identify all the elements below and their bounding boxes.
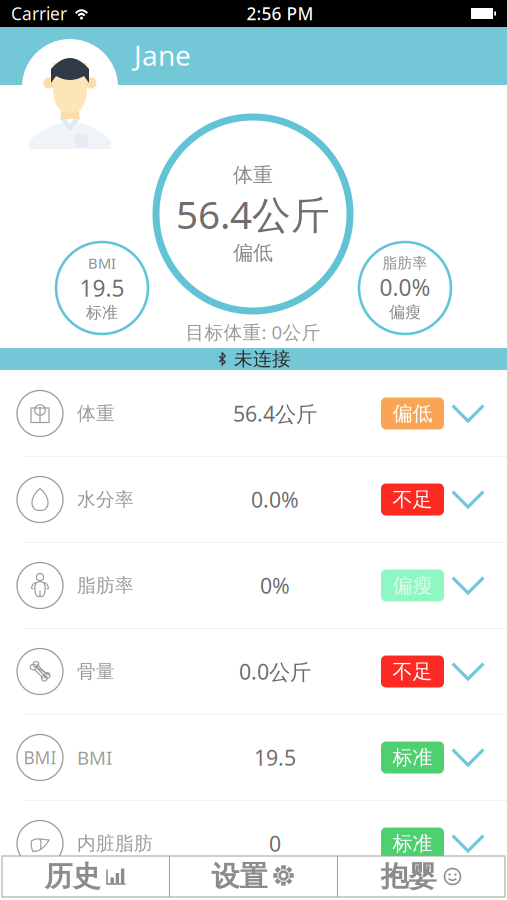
- staticText: 标准: [392, 831, 432, 856]
- staticText: 偏瘦: [392, 573, 432, 598]
- staticText: 标准: [392, 745, 432, 770]
- button[interactable]: 设置: [170, 856, 337, 897]
- staticText: Carrier: [11, 2, 67, 25]
- staticText: 偏低: [392, 401, 432, 426]
- button[interactable]: 历史: [2, 856, 169, 897]
- staticText: 内脏脂肪: [77, 832, 153, 855]
- button[interactable]: 体重: [0, 371, 507, 456]
- staticText: 体重: [77, 402, 115, 425]
- button[interactable]: BMI: [0, 715, 507, 800]
- staticText: 偏瘦: [389, 302, 421, 322]
- staticText: 体重: [233, 163, 273, 187]
- staticText: BMI: [23, 746, 56, 769]
- staticText: 骨量: [77, 660, 115, 683]
- staticText: 水分率: [77, 488, 134, 511]
- staticText: 不足: [392, 487, 432, 512]
- staticText: 19.5: [254, 743, 296, 772]
- button[interactable]: 脂肪率: [0, 543, 507, 628]
- staticText: BMI: [88, 253, 116, 273]
- button[interactable]: 骨量: [0, 629, 507, 714]
- button[interactable]: 内脏脂肪: [0, 801, 507, 886]
- staticText: Jane: [134, 36, 191, 74]
- staticText: 2:56 PM: [246, 2, 313, 25]
- staticText: BMI: [77, 745, 112, 770]
- button[interactable]: 抱婴: [338, 856, 505, 897]
- staticText: 0.0公斤: [239, 657, 311, 686]
- staticText: 0.0%: [379, 272, 430, 302]
- staticText: 56.4公斤: [233, 399, 317, 428]
- staticText: 不足: [392, 659, 432, 684]
- staticText: 0.0%: [251, 485, 299, 514]
- staticText: 目标体重: 0公斤: [185, 320, 320, 344]
- staticText: 未连接: [234, 347, 291, 370]
- staticText: 标准: [86, 303, 118, 323]
- button[interactable]: 水分率: [0, 457, 507, 542]
- staticText: 19.5: [79, 273, 124, 303]
- staticText: 偏低: [233, 241, 273, 265]
- staticText: 0%: [260, 571, 290, 600]
- staticText: 脂肪率: [382, 254, 427, 272]
- staticText: 脂肪率: [77, 574, 134, 597]
- staticText: 56.4公斤: [176, 188, 330, 240]
- staticText: 设置: [211, 859, 267, 894]
- staticText: 抱婴: [380, 859, 436, 894]
- staticText: 历史: [44, 859, 100, 894]
- staticText: 0: [269, 829, 281, 858]
